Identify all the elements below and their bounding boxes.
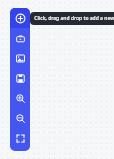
staticText: Click, drag and drop to add a new node bbox=[34, 15, 114, 22]
button[interactable]: Add image bbox=[10, 48, 30, 68]
button[interactable]: Add group bbox=[10, 28, 30, 48]
button[interactable]: Fit to screen bbox=[10, 128, 30, 148]
button[interactable]: Zoom out bbox=[10, 108, 30, 128]
button[interactable]: Save bbox=[10, 68, 30, 88]
button[interactable]: Zoom in bbox=[10, 88, 30, 108]
button[interactable]: Add node bbox=[10, 8, 30, 28]
